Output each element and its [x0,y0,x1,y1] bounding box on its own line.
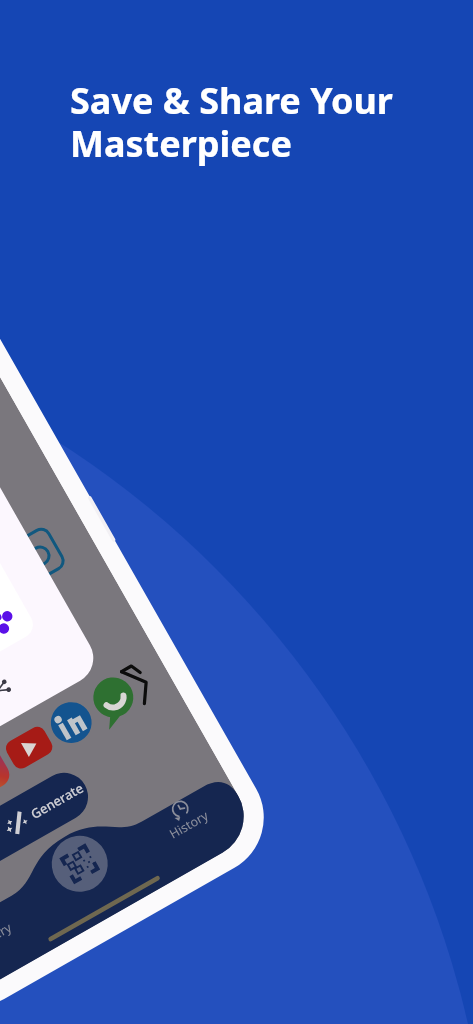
staticText: Save & Share Your Masterpiece [70,76,393,168]
button[interactable]: App preview [0,0,285,1024]
